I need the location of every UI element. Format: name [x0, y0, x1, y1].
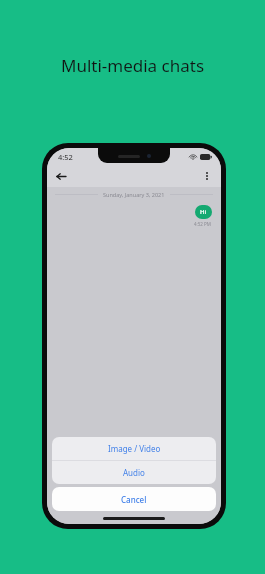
staticText: 4:52 [58, 152, 73, 162]
staticText: Sunday, January 3, 2021 [103, 191, 165, 198]
button[interactable]: Audio [52, 461, 216, 484]
button[interactable]: Image / Video [52, 437, 216, 460]
staticText: Audio [123, 467, 145, 478]
button[interactable]: Back [53, 168, 69, 184]
staticText: Cancel [121, 494, 147, 505]
staticText: Hi [200, 208, 207, 216]
button[interactable]: Hi [195, 205, 212, 219]
staticText: Multi-media chats [0, 54, 265, 77]
button[interactable]: More options [199, 168, 215, 184]
staticText: Image / Video [108, 443, 161, 454]
button[interactable]: Cancel [52, 487, 216, 511]
staticText: 4:52 PM [194, 221, 211, 227]
